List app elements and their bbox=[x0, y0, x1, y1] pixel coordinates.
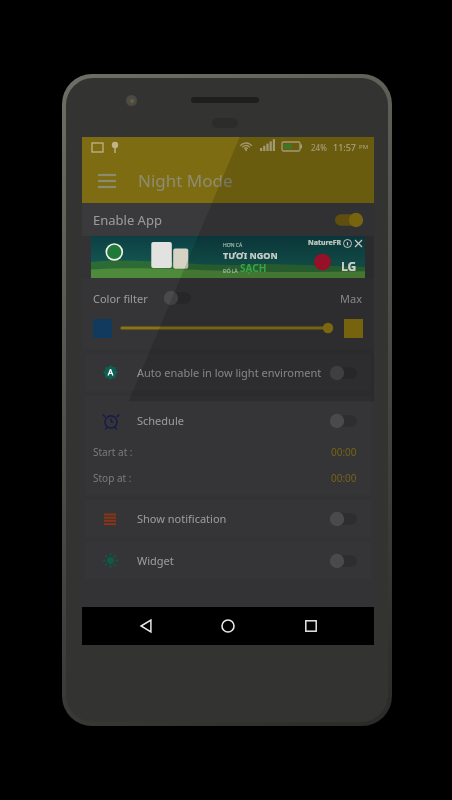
staticText: ĐÓ LÀ bbox=[223, 268, 238, 275]
staticText: Schedule bbox=[137, 413, 184, 428]
staticText: Color filter bbox=[93, 291, 148, 306]
staticText: 24% bbox=[311, 142, 327, 153]
staticText: NatureFR bbox=[308, 238, 342, 248]
button[interactable]: Home bbox=[209, 607, 247, 645]
button[interactable]: Recent apps bbox=[292, 607, 330, 645]
staticText: TƯƠI NGON bbox=[223, 249, 278, 261]
staticText: LG bbox=[341, 258, 357, 274]
staticText: Start at : bbox=[93, 445, 133, 459]
staticText: SẠCH bbox=[240, 261, 267, 275]
staticText: 00:00 bbox=[331, 445, 357, 459]
button[interactable]: Schedule bbox=[85, 402, 371, 439]
staticText: Enable App bbox=[93, 211, 162, 229]
button[interactable]: Color filter bbox=[82, 286, 374, 310]
button[interactable]: HƠN CÁ bbox=[91, 236, 365, 278]
button[interactable]: Open navigation menu bbox=[90, 163, 124, 197]
staticText: Stop at : bbox=[93, 471, 132, 485]
button[interactable]: Start at : bbox=[85, 439, 371, 465]
staticText: Night Mode bbox=[138, 169, 233, 192]
staticText: Max bbox=[340, 291, 362, 306]
staticText: PM bbox=[359, 143, 369, 151]
button[interactable]: Enable App bbox=[82, 203, 374, 236]
staticText: Widget bbox=[137, 553, 174, 568]
button[interactable]: Back bbox=[127, 607, 165, 645]
button[interactable]: Show notification bbox=[85, 500, 371, 537]
button[interactable]: Stop at : bbox=[85, 465, 371, 491]
staticText: Auto enable in low light enviroment bbox=[137, 365, 322, 380]
staticText: Show notification bbox=[137, 511, 227, 526]
staticText: HƠN CÁ bbox=[223, 242, 243, 249]
button[interactable] bbox=[122, 318, 336, 338]
staticText: 00:00 bbox=[331, 471, 357, 485]
button[interactable]: Auto enable in low light enviroment bbox=[85, 354, 371, 391]
staticText: 11:57 bbox=[333, 141, 357, 153]
button[interactable]: Widget bbox=[85, 542, 371, 579]
